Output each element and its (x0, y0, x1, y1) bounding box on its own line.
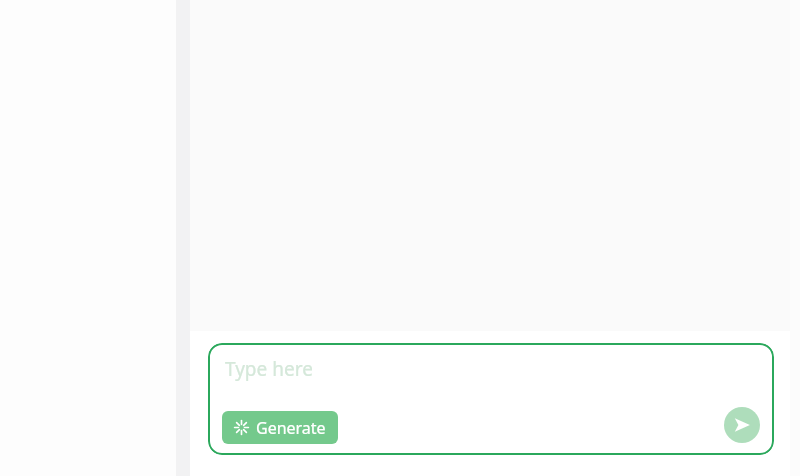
staticText: Generate (256, 417, 326, 439)
staticText: Type here (225, 356, 313, 382)
button[interactable]: Send (724, 407, 760, 443)
button[interactable]: Generate (222, 411, 338, 444)
button[interactable]: Type here (208, 343, 774, 455)
